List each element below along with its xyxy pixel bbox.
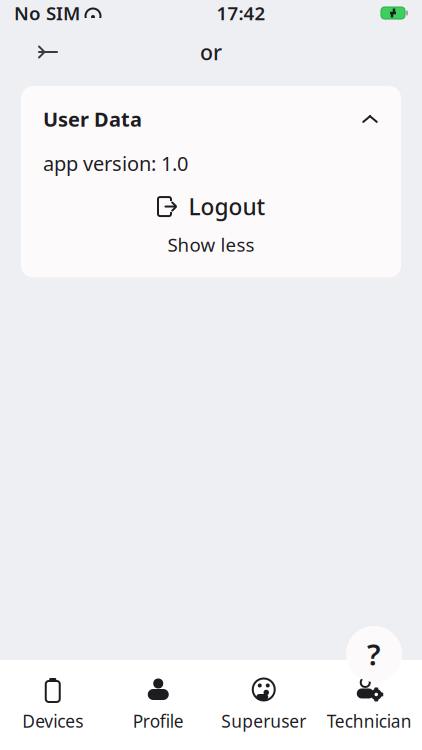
button[interactable]: Technician	[316, 669, 422, 741]
staticText: or	[200, 38, 222, 66]
staticText: User Data	[43, 106, 142, 132]
staticText: Devices	[22, 709, 83, 732]
staticText: 17:42	[216, 1, 265, 25]
staticText: app version: 1.0	[43, 150, 188, 177]
button[interactable]: Help	[346, 626, 402, 682]
staticText: No SIM	[14, 1, 80, 25]
button[interactable]: Back	[26, 30, 70, 74]
staticText: Technician	[327, 709, 412, 732]
staticText: Logout	[188, 191, 265, 222]
staticText: ?	[367, 634, 381, 673]
button[interactable]: Profile	[105, 669, 211, 741]
staticText: Profile	[133, 709, 184, 732]
button[interactable]: Superuser	[211, 669, 316, 741]
button[interactable]: Logout	[43, 194, 379, 220]
staticText: Show less	[167, 232, 254, 257]
button[interactable]: User Data	[43, 108, 379, 130]
button[interactable]: Show less	[43, 234, 379, 256]
button[interactable]: Devices	[0, 669, 105, 741]
staticText: Superuser	[221, 709, 306, 732]
